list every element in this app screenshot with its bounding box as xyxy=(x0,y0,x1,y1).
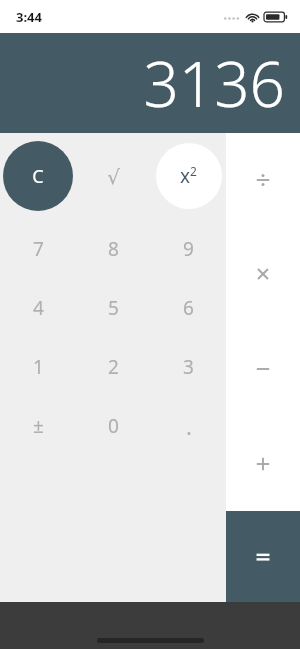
button[interactable]: 6 xyxy=(151,278,226,337)
staticText: 7 xyxy=(33,236,44,262)
button[interactable]: ± xyxy=(0,396,76,455)
staticText: 3136 xyxy=(143,41,285,125)
button[interactable]: Add xyxy=(226,416,300,511)
staticText: 1 xyxy=(33,354,44,380)
staticText: 9 xyxy=(183,236,194,262)
button[interactable]: 3 xyxy=(151,337,226,396)
staticText: x2 xyxy=(180,163,197,189)
staticText: . xyxy=(186,411,192,441)
button[interactable]: x2 xyxy=(151,133,226,219)
button[interactable]: 1 xyxy=(0,337,76,396)
button[interactable]: Subtract xyxy=(226,321,300,416)
staticText: ± xyxy=(33,413,44,439)
staticText: 5 xyxy=(108,295,119,321)
staticText: 3 xyxy=(183,354,194,380)
staticText: √ xyxy=(107,165,120,188)
button[interactable]: 9 xyxy=(151,219,226,278)
button[interactable]: Divide xyxy=(226,133,300,227)
staticText: 2 xyxy=(108,354,119,380)
button[interactable]: 4 xyxy=(0,278,76,337)
button[interactable]: Multiply xyxy=(226,227,300,321)
button[interactable]: 2 xyxy=(76,337,151,396)
button[interactable]: C xyxy=(0,133,76,219)
staticText: 6 xyxy=(183,295,194,321)
button[interactable]: 0 xyxy=(76,396,151,455)
button[interactable]: 7 xyxy=(0,219,76,278)
button[interactable]: √ xyxy=(76,133,151,219)
staticText: 0 xyxy=(108,413,119,439)
button[interactable]: Equals xyxy=(226,511,300,602)
staticText: 8 xyxy=(108,236,119,262)
button[interactable]: 5 xyxy=(76,278,151,337)
button[interactable]: 8 xyxy=(76,219,151,278)
staticText: C xyxy=(32,164,44,189)
staticText: 4 xyxy=(33,295,44,321)
staticText: 3:44 xyxy=(16,8,42,26)
